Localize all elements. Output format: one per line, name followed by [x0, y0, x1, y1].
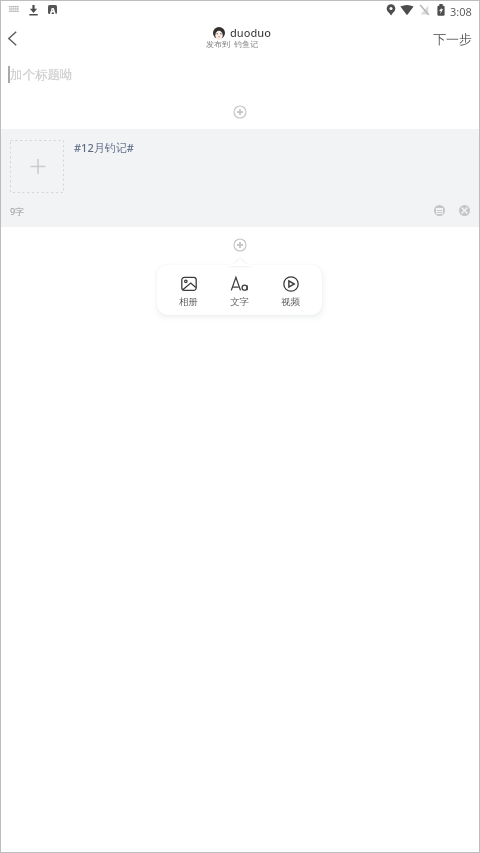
button[interactable]: duoduo: [213, 25, 271, 40]
button[interactable]: 加个标题呦: [0, 56, 480, 92]
staticText: A: [50, 5, 56, 14]
staticText: 下一步: [433, 31, 472, 47]
staticText: duoduo: [230, 25, 271, 40]
button[interactable]: Add content block: [233, 238, 247, 252]
button[interactable]: Delete block: [459, 205, 470, 216]
button[interactable]: 视频: [265, 265, 316, 315]
staticText: 发布到 钓鱼记: [206, 38, 259, 49]
button[interactable]: Add image: [10, 140, 64, 193]
button[interactable]: 下一步: [427, 26, 478, 52]
button[interactable]: Back: [0, 22, 29, 55]
button[interactable]: 文字: [214, 265, 265, 315]
staticText: 文字: [230, 296, 249, 308]
staticText: 3:08: [450, 4, 472, 19]
staticText: 相册: [179, 296, 198, 308]
staticText: 加个标题呦: [10, 67, 73, 83]
staticText: #12月钓记#: [74, 140, 134, 155]
button[interactable]: 相册: [163, 265, 214, 315]
staticText: 视频: [281, 296, 300, 308]
button[interactable]: Add content block: [233, 105, 247, 119]
button[interactable]: Reorder block: [434, 205, 445, 216]
staticText: 9字: [10, 205, 25, 217]
